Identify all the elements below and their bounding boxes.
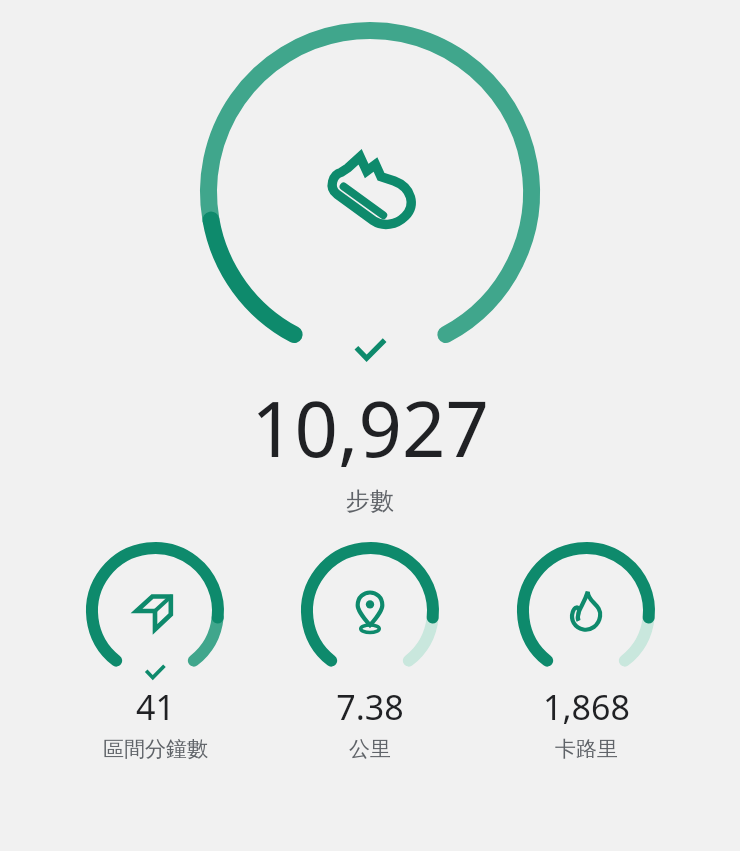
staticText: 1,868 — [543, 684, 630, 730]
button[interactable]: 區間分鐘數 — [86, 542, 224, 680]
button[interactable]: 公里 — [301, 542, 439, 680]
staticText: 區間分鐘數 — [103, 736, 208, 762]
staticText: 卡路里 — [555, 736, 618, 762]
staticText: 公里 — [349, 736, 391, 762]
button[interactable]: 卡路里 — [517, 542, 655, 762]
staticText: 步數 — [346, 486, 394, 516]
staticText: 10,927 — [251, 376, 489, 480]
staticText: 41 — [136, 684, 175, 730]
button[interactable]: 公里 — [301, 542, 439, 762]
button[interactable]: 區間分鐘數 — [86, 542, 224, 762]
button[interactable]: Steps ring, goal reached — [200, 22, 540, 362]
staticText: 7.38 — [336, 684, 404, 730]
button[interactable]: 卡路里 — [517, 542, 655, 680]
